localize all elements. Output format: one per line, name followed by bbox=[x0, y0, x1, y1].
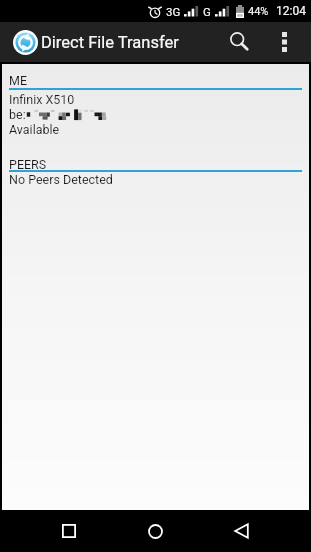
button[interactable]: Back bbox=[211, 510, 271, 552]
staticText: Infinix X510 bbox=[9, 92, 75, 107]
staticText: PEERS bbox=[9, 157, 47, 172]
staticText: No Peers Detected bbox=[9, 172, 113, 187]
button[interactable]: Search bbox=[214, 22, 265, 62]
button[interactable]: No Peers Detected bbox=[9, 172, 302, 187]
staticText: 44% bbox=[248, 5, 269, 18]
button[interactable]: Recent apps bbox=[39, 510, 99, 552]
button[interactable]: ME bbox=[9, 73, 302, 88]
staticText: be: bbox=[9, 107, 26, 122]
button[interactable]: More options bbox=[265, 22, 304, 62]
staticText: 3G bbox=[166, 5, 181, 18]
button[interactable]: Home bbox=[125, 510, 185, 552]
button[interactable]: Infinix X510 bbox=[9, 92, 302, 137]
button[interactable]: PEERS bbox=[9, 157, 302, 172]
staticText: 12:04 bbox=[276, 4, 306, 18]
staticText: G bbox=[203, 5, 211, 18]
staticText: Direct File Transfer bbox=[41, 33, 179, 52]
staticText: ME bbox=[9, 73, 28, 88]
staticText: Available bbox=[9, 122, 60, 137]
